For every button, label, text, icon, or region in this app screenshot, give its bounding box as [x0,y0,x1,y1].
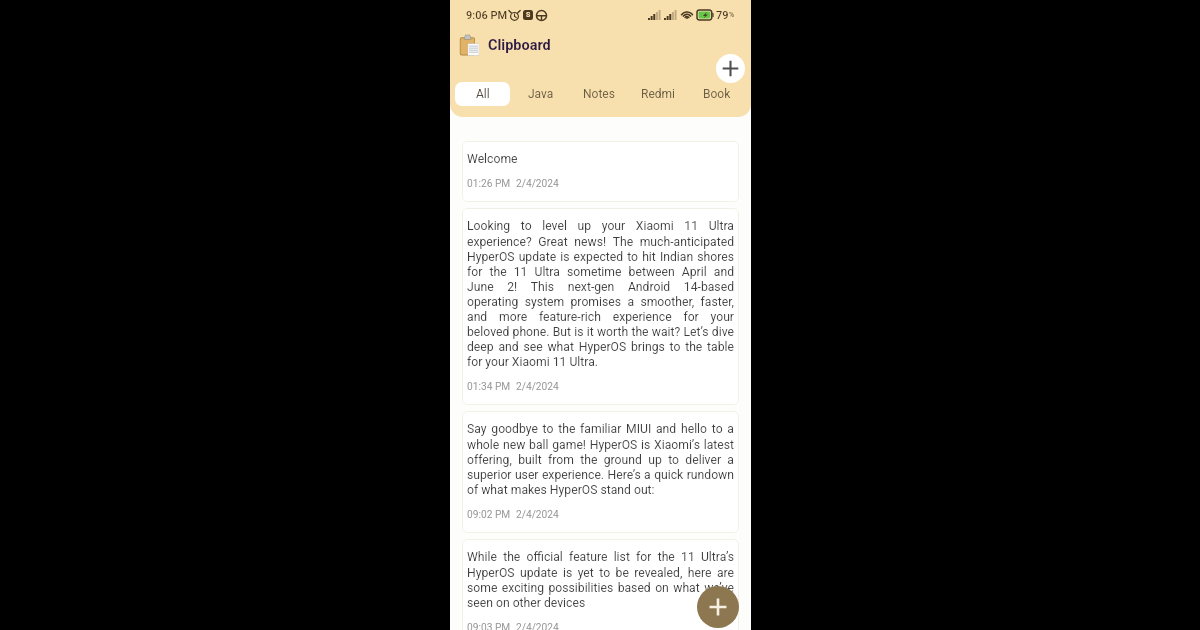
button[interactable]: New clip [716,54,745,83]
staticText: 01:34 PM [467,381,511,393]
staticText: 2/4/2024 [516,509,559,521]
staticText: % [729,11,735,19]
staticText: S [526,11,531,19]
staticText: Java [528,87,554,101]
staticText: Looking to level up your Xiaomi 11 Ultra… [467,219,734,369]
staticText: 2/4/2024 [516,178,559,190]
staticText: Clipboard [488,37,551,54]
staticText: Notes [583,87,615,101]
staticText: Welcome [467,152,518,166]
staticText: 79 [716,9,729,22]
staticText: All [476,87,490,101]
button[interactable]: Notes [571,82,627,106]
staticText: Redmi [641,87,675,101]
button[interactable]: Welcome [462,141,739,202]
button[interactable]: Redmi [630,82,686,106]
staticText: Book [703,87,731,101]
staticText: 09:03 PM [467,622,511,630]
staticText: 9:06 PM [466,9,508,22]
staticText: Say goodbye to the familiar MIUI and hel… [467,422,734,497]
button[interactable]: All [455,82,510,106]
staticText: 09:02 PM [467,509,511,521]
staticText: 2/4/2024 [516,381,559,393]
button[interactable]: Say goodbye to the familiar MIUI and hel… [462,411,739,533]
staticText: 2/4/2024 [516,622,559,630]
button[interactable]: Looking to level up your Xiaomi 11 Ultra… [462,208,739,405]
staticText: While the official feature list for the … [467,550,734,610]
button[interactable]: While the official feature list for the … [462,539,739,630]
button[interactable]: Add clip [697,586,739,628]
button[interactable]: Java [513,82,569,106]
button[interactable]: Book [689,82,745,106]
staticText: 01:26 PM [467,178,511,190]
